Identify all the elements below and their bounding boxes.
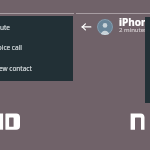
- button[interactable]: New contact: [0, 58, 67, 78]
- staticText: Voice call: [0, 43, 22, 52]
- staticText: 2 minutes: [119, 26, 150, 34]
- button[interactable]: Contact photo: [97, 19, 113, 35]
- button[interactable]: Voice call: [0, 37, 67, 57]
- button[interactable]: Mute: [0, 17, 67, 37]
- staticText: iPhone: [119, 15, 150, 29]
- button[interactable]: Back: [78, 18, 95, 35]
- staticText: New contact: [0, 64, 32, 73]
- staticText: Mute: [0, 23, 10, 32]
